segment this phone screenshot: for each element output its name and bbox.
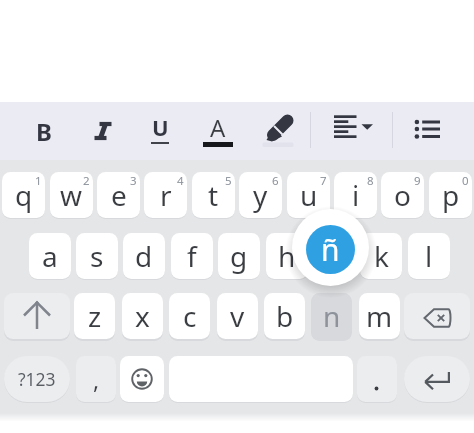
button[interactable]: a bbox=[29, 233, 71, 279]
staticText: 2 bbox=[83, 173, 90, 189]
staticText: d bbox=[135, 237, 153, 275]
staticText: x bbox=[135, 297, 150, 335]
button[interactable]: d bbox=[123, 233, 165, 279]
button[interactable]: y bbox=[239, 172, 282, 218]
staticText: 4 bbox=[177, 173, 184, 189]
button[interactable]: i bbox=[334, 172, 377, 218]
staticText: r bbox=[160, 176, 172, 214]
staticText: v bbox=[230, 297, 245, 335]
staticText: n bbox=[323, 297, 341, 335]
button[interactable] bbox=[404, 293, 470, 339]
staticText: y bbox=[253, 176, 268, 214]
staticText: s bbox=[90, 237, 104, 275]
staticText: 5 bbox=[225, 173, 232, 189]
button[interactable]: x bbox=[122, 293, 163, 339]
button[interactable]: ñ bbox=[306, 225, 355, 274]
staticText: 0 bbox=[462, 173, 469, 189]
staticText: 8 bbox=[367, 173, 374, 189]
staticText: a bbox=[42, 237, 58, 275]
button[interactable] bbox=[413, 114, 443, 144]
button[interactable]: p bbox=[429, 172, 472, 218]
staticText: b bbox=[276, 297, 294, 335]
staticText: u bbox=[300, 176, 318, 214]
staticText: ?123 bbox=[18, 367, 56, 391]
button[interactable]: u bbox=[287, 172, 330, 218]
button[interactable]: , bbox=[76, 356, 116, 402]
staticText: 3 bbox=[130, 173, 137, 189]
button[interactable]: ?123 bbox=[4, 356, 70, 402]
button[interactable]: g bbox=[218, 233, 260, 279]
button[interactable]: k bbox=[360, 233, 402, 279]
staticText: p bbox=[442, 176, 460, 214]
button[interactable] bbox=[120, 356, 164, 402]
staticText: B bbox=[36, 115, 52, 148]
button[interactable]: A bbox=[200, 111, 236, 151]
staticText: 6 bbox=[272, 173, 279, 189]
staticText: U bbox=[152, 112, 169, 142]
staticText: f bbox=[187, 237, 197, 275]
staticText: w bbox=[60, 176, 83, 214]
button[interactable]: f bbox=[171, 233, 213, 279]
staticText: m bbox=[366, 297, 393, 335]
button[interactable]: U bbox=[142, 111, 178, 151]
staticText: k bbox=[374, 237, 389, 275]
staticText: z bbox=[88, 297, 102, 335]
button[interactable]: w bbox=[50, 172, 93, 218]
staticText: e bbox=[111, 176, 127, 214]
staticText: h bbox=[278, 237, 296, 275]
staticText: 9 bbox=[414, 173, 421, 189]
staticText: , bbox=[93, 364, 100, 395]
staticText: t bbox=[208, 176, 219, 214]
staticText: ñ bbox=[321, 229, 340, 270]
button[interactable]: b bbox=[264, 293, 305, 339]
staticText: q bbox=[15, 176, 33, 214]
button[interactable]: l bbox=[408, 233, 450, 279]
button[interactable]: c bbox=[169, 293, 210, 339]
staticText: c bbox=[183, 297, 197, 335]
staticText: A bbox=[210, 111, 226, 141]
staticText: o bbox=[394, 176, 411, 214]
button[interactable]: q bbox=[2, 172, 45, 218]
button[interactable]: s bbox=[76, 233, 118, 279]
button[interactable]: h bbox=[266, 233, 308, 279]
button[interactable] bbox=[330, 111, 376, 151]
staticText: 7 bbox=[320, 173, 327, 189]
button[interactable] bbox=[357, 356, 397, 402]
button[interactable]: o bbox=[381, 172, 424, 218]
button[interactable]: B bbox=[26, 111, 62, 151]
staticText: 1 bbox=[35, 173, 42, 189]
button[interactable]: j bbox=[313, 233, 355, 279]
staticText: g bbox=[230, 237, 248, 275]
button[interactable] bbox=[85, 111, 121, 151]
button[interactable]: r bbox=[144, 172, 187, 218]
staticText: j bbox=[330, 237, 338, 275]
button[interactable] bbox=[404, 356, 470, 402]
button[interactable] bbox=[4, 293, 70, 339]
button[interactable]: n bbox=[311, 293, 352, 339]
button[interactable]: z bbox=[74, 293, 115, 339]
staticText: l bbox=[425, 237, 433, 275]
staticText: i bbox=[352, 176, 360, 214]
button[interactable]: v bbox=[217, 293, 258, 339]
button[interactable]: e bbox=[97, 172, 140, 218]
button[interactable] bbox=[256, 110, 300, 150]
button[interactable]: t bbox=[192, 172, 235, 218]
button[interactable]: m bbox=[359, 293, 400, 339]
